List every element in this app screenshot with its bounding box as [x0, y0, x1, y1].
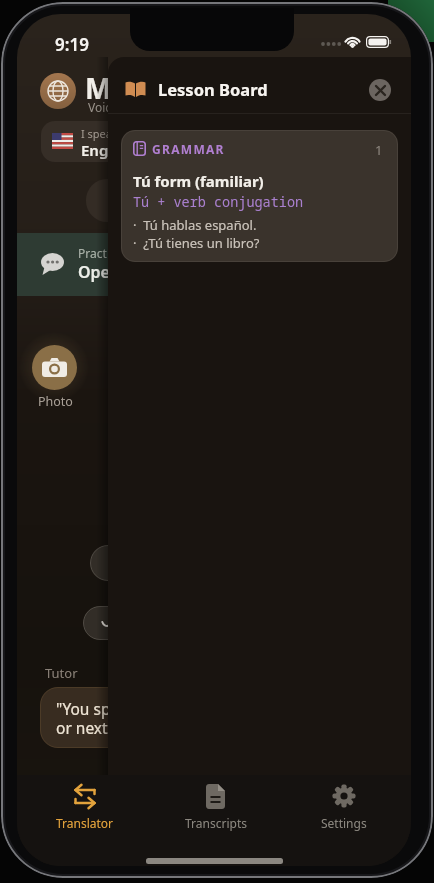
staticText: Open: [78, 261, 121, 283]
button[interactable]: [32, 345, 77, 390]
staticText: Settings: [321, 815, 367, 831]
staticText: Translator: [56, 815, 114, 831]
staticText: GRAMMAR: [152, 141, 225, 157]
button[interactable]: [83, 606, 150, 640]
staticText: Engl: [81, 140, 113, 160]
button[interactable]: Settings: [299, 781, 389, 837]
staticText: Voice: [88, 99, 118, 115]
staticText: 9:19: [55, 33, 89, 56]
staticText: Transcripts: [185, 815, 247, 831]
staticText: · ¿Tú tienes un libro?: [133, 234, 260, 252]
staticText: Tú form (familiar): [133, 171, 264, 191]
staticText: Photo: [38, 393, 73, 410]
staticText: I spea: [81, 126, 112, 141]
staticText: Lesson Board: [158, 78, 268, 100]
button[interactable]: Pract: [17, 233, 137, 296]
staticText: Pract: [78, 245, 107, 261]
staticText: · Tú hablas español.: [133, 216, 257, 234]
button[interactable]: Transcripts: [170, 781, 261, 837]
staticText: 1: [375, 141, 383, 159]
button[interactable]: [369, 79, 391, 101]
staticText: "You sp: [56, 698, 111, 719]
button[interactable]: [90, 545, 150, 581]
button[interactable]: "You sp: [40, 687, 150, 748]
staticText: Tutor: [45, 664, 78, 682]
button[interactable]: Translator: [40, 781, 130, 837]
staticText: or next: [56, 717, 108, 738]
staticText: My: [85, 69, 128, 107]
button[interactable]: [41, 121, 141, 162]
staticText: Tú + verb conjugation: [133, 193, 304, 211]
button[interactable]: GRAMMAR: [121, 130, 398, 262]
